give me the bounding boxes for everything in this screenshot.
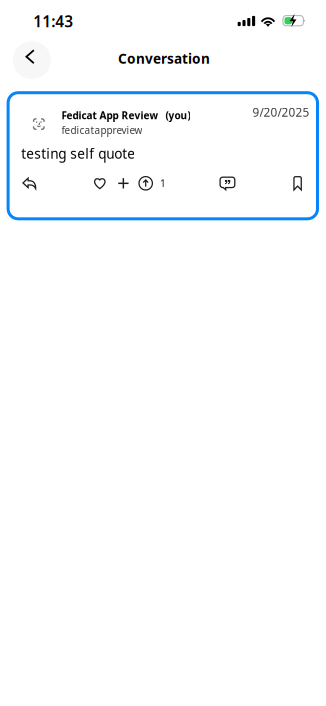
button[interactable]: Reply: [16, 171, 42, 195]
button[interactable]: Boost: [139, 171, 166, 195]
staticText: 9/20/2025: [252, 104, 309, 120]
button[interactable]: Bookmark: [287, 171, 309, 195]
button[interactable]: Back: [13, 41, 51, 79]
button[interactable]: Add reaction: [112, 171, 134, 195]
staticText: (you): [165, 108, 190, 122]
staticText: 11:43: [33, 11, 73, 32]
staticText: testing self quote: [21, 144, 135, 163]
staticText: Conversation: [118, 49, 210, 68]
staticText: Fedicat App Review: [61, 108, 158, 122]
staticText: fedicatappreview: [61, 123, 142, 137]
button[interactable]: Quote: [214, 171, 240, 195]
button[interactable]: Like: [88, 171, 112, 195]
staticText: 1: [160, 176, 166, 190]
